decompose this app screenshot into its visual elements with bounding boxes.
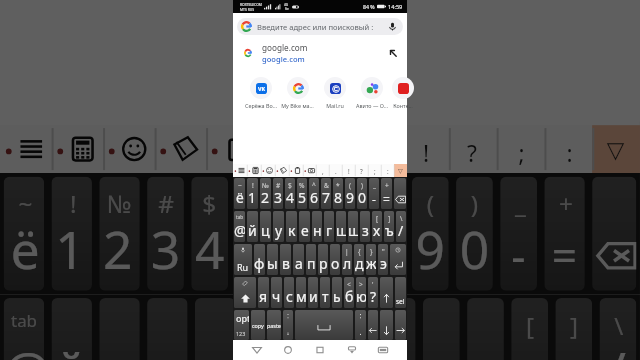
button[interactable]: Keyboard tool 4 bbox=[275, 164, 289, 177]
button[interactable]: + bbox=[544, 177, 585, 291]
button[interactable]: ~ bbox=[4, 177, 44, 291]
button[interactable]: Home bbox=[280, 342, 296, 358]
button[interactable] bbox=[380, 310, 393, 340]
button[interactable] bbox=[368, 310, 378, 340]
button[interactable]: Keyboard tool 10 bbox=[355, 164, 368, 177]
button[interactable]: Keyboard tool 5 bbox=[206, 125, 257, 173]
button[interactable] bbox=[355, 310, 366, 340]
button[interactable]: Keyboard tool 3 bbox=[261, 164, 275, 177]
button[interactable]: # bbox=[273, 178, 283, 209]
button[interactable]: у bbox=[147, 298, 188, 360]
button[interactable]: Keyboard tool 12 bbox=[381, 164, 394, 177]
button[interactable]: | bbox=[342, 244, 352, 275]
button[interactable]: № bbox=[260, 178, 271, 209]
button[interactable]: Keyboard tool 8 bbox=[353, 125, 401, 173]
button[interactable]: & bbox=[321, 178, 331, 209]
button[interactable]: е bbox=[243, 298, 283, 360]
button[interactable]: 123 bbox=[234, 310, 249, 340]
button[interactable]: < bbox=[344, 277, 354, 308]
button[interactable]: у bbox=[273, 211, 284, 242]
button[interactable]: Back bbox=[249, 342, 265, 358]
button[interactable] bbox=[395, 310, 406, 340]
button[interactable]: > bbox=[356, 277, 366, 308]
button[interactable]: $ bbox=[285, 178, 295, 209]
button[interactable]: copy bbox=[251, 310, 265, 340]
button[interactable]: Контк… bbox=[390, 77, 416, 109]
button[interactable]: Keyboard tool 5 bbox=[289, 164, 303, 177]
button[interactable]: Keyboard tool 2 bbox=[247, 164, 261, 177]
button[interactable]: Keyboard tool 7 bbox=[305, 125, 353, 173]
button[interactable]: My Bike ма… bbox=[279, 77, 316, 109]
button[interactable]: { bbox=[354, 244, 364, 275]
button[interactable]: paste bbox=[267, 310, 281, 340]
button[interactable] bbox=[394, 178, 406, 209]
button[interactable]: VK bbox=[242, 77, 279, 109]
button[interactable]: sel bbox=[395, 277, 406, 308]
button[interactable]: ) bbox=[357, 178, 367, 209]
button[interactable]: н bbox=[291, 298, 327, 360]
button[interactable]: google.com bbox=[233, 41, 407, 64]
button[interactable]: ( bbox=[345, 178, 355, 209]
button[interactable]: _ bbox=[500, 177, 537, 291]
button[interactable]: к bbox=[286, 211, 297, 242]
button[interactable]: г bbox=[324, 211, 334, 242]
button[interactable]: [ bbox=[511, 298, 548, 360]
button[interactable]: Keyboard tool 4 bbox=[154, 125, 206, 173]
button[interactable]: Keyboard tool 9 bbox=[401, 125, 449, 173]
button[interactable]: ) bbox=[456, 177, 493, 291]
button[interactable]: а bbox=[293, 244, 304, 275]
button[interactable]: и bbox=[308, 277, 318, 308]
button[interactable]: к bbox=[195, 298, 235, 360]
button[interactable]: Keyboard tool 3 bbox=[103, 125, 154, 173]
button[interactable]: Keyboard tool 6 bbox=[303, 164, 316, 177]
button[interactable]: й bbox=[51, 298, 92, 360]
button[interactable]: Keyboard tool 1 bbox=[233, 164, 247, 177]
button[interactable]: Mail.ru bbox=[316, 77, 353, 109]
button[interactable]: & bbox=[324, 177, 360, 291]
button[interactable]: з bbox=[360, 211, 370, 242]
button[interactable]: " bbox=[378, 244, 388, 275]
button[interactable]: Keyboard tool 11 bbox=[496, 125, 544, 173]
button[interactable] bbox=[283, 310, 293, 340]
button[interactable]: н bbox=[312, 211, 322, 242]
button[interactable]: ь bbox=[332, 277, 342, 308]
button[interactable]: Switch keyboard bbox=[375, 342, 391, 358]
button[interactable]: ' bbox=[368, 277, 378, 308]
button[interactable]: Keyboard tool 13 bbox=[592, 125, 640, 173]
button[interactable]: % bbox=[235, 177, 272, 291]
button[interactable]: Use this suggestion bbox=[388, 48, 398, 58]
button[interactable]: п bbox=[306, 244, 316, 275]
button[interactable]: Keyboard tool 6 bbox=[257, 125, 305, 173]
button[interactable] bbox=[234, 277, 256, 308]
button[interactable]: ] bbox=[384, 211, 394, 242]
button[interactable]: * bbox=[368, 177, 405, 291]
button[interactable]: ч bbox=[271, 277, 282, 308]
button[interactable]: ! bbox=[247, 178, 258, 209]
button[interactable]: Recent apps bbox=[312, 342, 328, 358]
button[interactable]: щ bbox=[348, 211, 358, 242]
button[interactable]: т bbox=[320, 277, 330, 308]
button[interactable]: tab bbox=[234, 211, 245, 242]
button[interactable]: Keyboard tool 13 bbox=[394, 164, 407, 177]
button[interactable]: Keyboard tool 9 bbox=[342, 164, 355, 177]
button[interactable] bbox=[390, 244, 406, 275]
button[interactable]: ( bbox=[412, 177, 449, 291]
button[interactable]: о bbox=[330, 244, 340, 275]
button[interactable]: ц bbox=[260, 211, 271, 242]
button[interactable] bbox=[592, 177, 636, 291]
button[interactable]: я bbox=[258, 277, 269, 308]
button[interactable]: № bbox=[99, 177, 140, 291]
button[interactable]: р bbox=[318, 244, 328, 275]
button[interactable]: Введите адрес или поисковый : bbox=[237, 18, 403, 35]
button[interactable]: м bbox=[296, 277, 306, 308]
button[interactable]: Keyboard tool 7 bbox=[316, 164, 329, 177]
button[interactable]: * bbox=[333, 178, 343, 209]
button[interactable]: ] bbox=[555, 298, 592, 360]
button[interactable]: [ bbox=[372, 211, 382, 242]
button[interactable]: Keyboard tool 1 bbox=[0, 125, 51, 173]
button[interactable]: } bbox=[366, 244, 376, 275]
button[interactable]: # bbox=[147, 177, 184, 291]
button[interactable]: Ru bbox=[234, 244, 252, 275]
